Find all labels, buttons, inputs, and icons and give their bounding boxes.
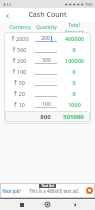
staticText: 1000 bbox=[68, 101, 81, 108]
staticText: 4:12 bbox=[3, 2, 11, 7]
staticText: ₹ 500 bbox=[12, 46, 27, 53]
staticText: ₹ 200 bbox=[12, 57, 27, 64]
staticText: 0 bbox=[72, 79, 76, 86]
staticText: 400000 bbox=[65, 35, 84, 42]
button[interactable]: Nice job! bbox=[0, 183, 95, 198]
staticText: 0 bbox=[72, 90, 76, 97]
staticText: 200 bbox=[41, 35, 50, 41]
button[interactable]: Back bbox=[2, 10, 13, 21]
staticText: Cash Count bbox=[28, 10, 67, 20]
button[interactable]: ₹ 2000 bbox=[4, 33, 91, 44]
staticText: Test Ad bbox=[41, 183, 54, 188]
button[interactable]: ₹ 500 bbox=[4, 44, 91, 55]
button[interactable]: ₹ 20 bbox=[4, 88, 91, 99]
staticText: 501000 bbox=[63, 113, 84, 121]
staticText: ₹ 10 bbox=[14, 101, 25, 108]
staticText: 0 bbox=[72, 68, 76, 75]
button[interactable]: 800 bbox=[5, 111, 90, 122]
staticText: 800 bbox=[40, 113, 51, 121]
staticText: Total Amount bbox=[59, 22, 89, 32]
staticText: ₹ 100 bbox=[12, 68, 27, 75]
staticText: ₹ 2000 bbox=[11, 35, 29, 42]
staticText: Nice job! bbox=[2, 188, 21, 194]
staticText: ₹ 50 bbox=[14, 79, 25, 86]
button[interactable]: ₹ 100 bbox=[4, 66, 91, 77]
staticText: 500 bbox=[42, 57, 51, 63]
button[interactable]: ₹ 50 bbox=[4, 77, 91, 88]
button[interactable]: Recents bbox=[16, 199, 27, 210]
staticText: Quantity bbox=[36, 24, 57, 31]
button[interactable]: ₹ 10 bbox=[4, 99, 91, 110]
staticText: 0 bbox=[72, 46, 76, 53]
button[interactable]: Home bbox=[42, 199, 53, 210]
button[interactable]: Back bbox=[69, 199, 80, 210]
staticText: This is a 468x60 test ad. bbox=[29, 188, 79, 194]
staticText: Currency bbox=[9, 24, 31, 31]
staticText: 100 bbox=[42, 101, 51, 107]
staticText: 79% bbox=[85, 2, 93, 7]
staticText: 100000 bbox=[65, 57, 84, 64]
button[interactable]: ₹ 200 bbox=[4, 55, 91, 66]
staticText: ₹ 20 bbox=[14, 90, 25, 97]
